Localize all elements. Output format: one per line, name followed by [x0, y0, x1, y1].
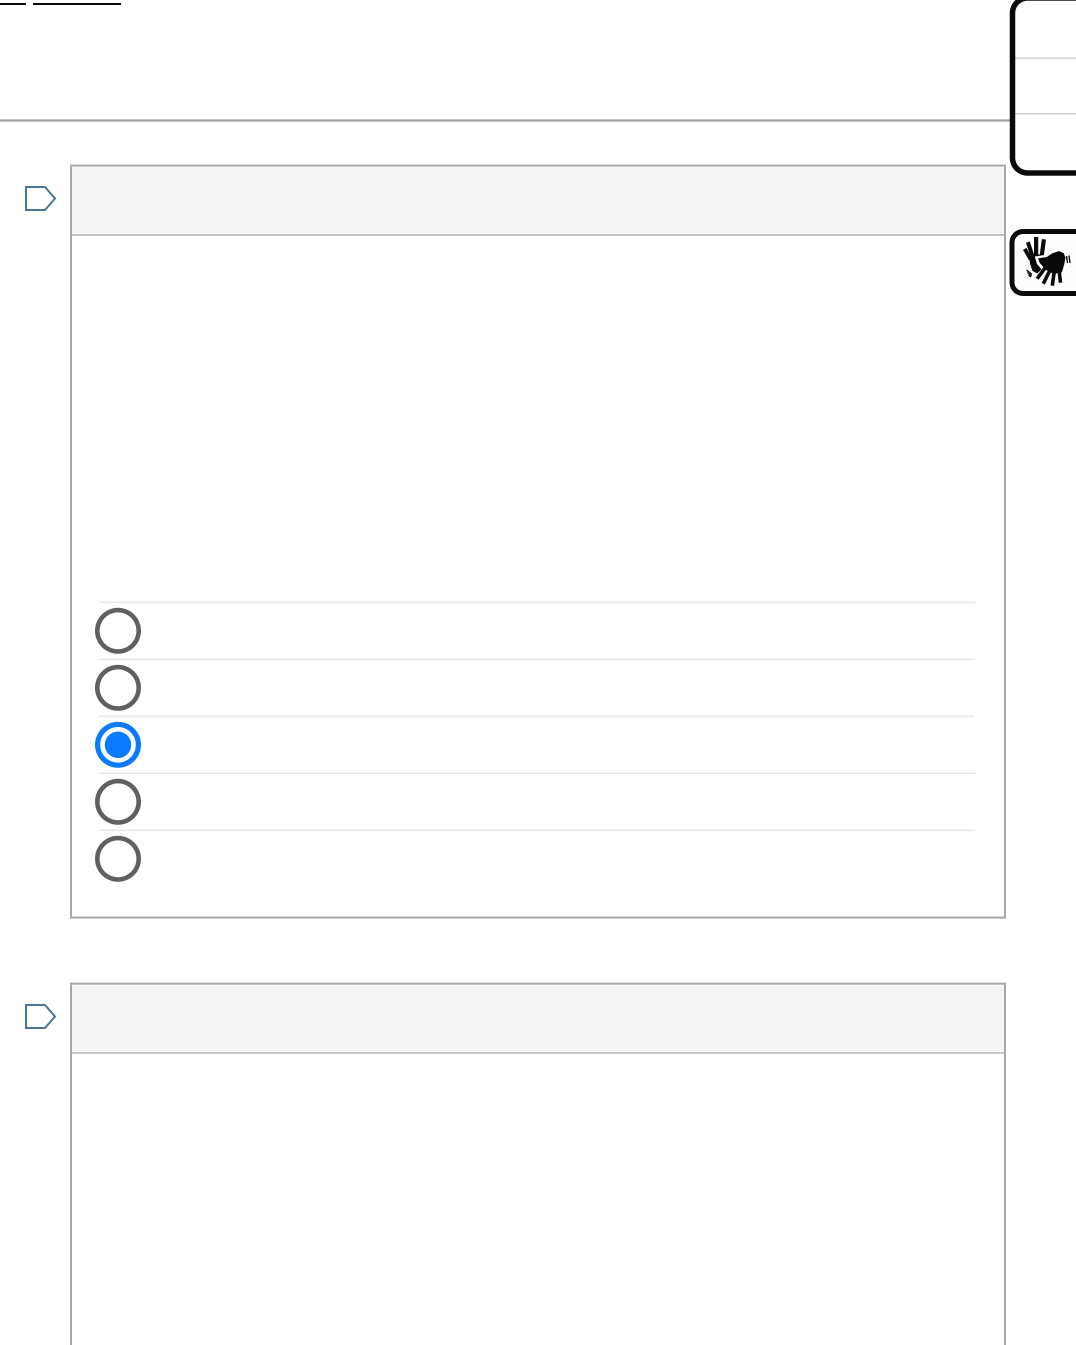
button[interactable]: Answer option 5 [70, 831, 1006, 887]
button[interactable]: Answer option 2 [70, 660, 1006, 716]
button[interactable]: Answer option 1 [70, 603, 1006, 659]
button[interactable]: Accessibility tools [1012, 0, 1076, 173]
button[interactable]: Sign language interpretation [1012, 231, 1076, 293]
button[interactable]: Answer option 3 [70, 717, 1006, 773]
button[interactable]: Answer option 4 [70, 774, 1006, 830]
